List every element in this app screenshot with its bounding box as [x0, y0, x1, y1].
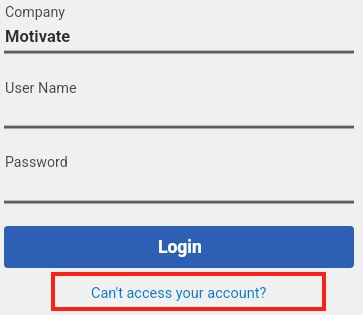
- staticText: Login: [158, 237, 202, 258]
- staticText: Can't access your account?: [91, 285, 267, 302]
- staticText: User Name: [5, 80, 77, 97]
- button[interactable]: Company: [4, 0, 354, 51]
- button[interactable]: Login: [4, 226, 354, 268]
- staticText: Motivate: [5, 27, 71, 46]
- button[interactable]: User Name: [4, 54, 354, 126]
- staticText: Company: [5, 4, 65, 21]
- button[interactable]: Can't access your account?: [55, 276, 322, 307]
- staticText: Password: [5, 154, 68, 171]
- button[interactable]: Password: [4, 129, 354, 201]
